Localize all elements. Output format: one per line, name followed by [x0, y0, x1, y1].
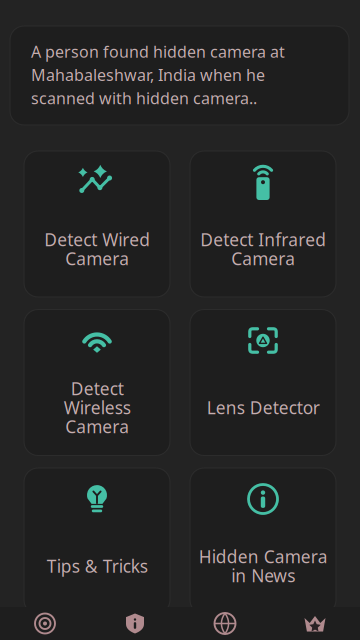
staticText: Detect Wired Camera: [44, 228, 150, 270]
staticText: Detect Infrared Camera: [200, 228, 326, 270]
staticText: Lens Detector: [206, 396, 319, 419]
button[interactable]: Hidden Camera in News: [190, 468, 336, 614]
button[interactable]: Detect Infrared Camera: [190, 151, 336, 297]
button[interactable]: Detect: [0, 607, 90, 640]
staticText: A person found hidden camera at Mahabale…: [31, 41, 285, 109]
staticText: Detect Wireless Camera: [63, 377, 130, 438]
button[interactable]: Security: [90, 607, 180, 640]
button[interactable]: Tips & Tricks: [24, 468, 170, 614]
staticText: Tips & Tricks: [46, 554, 147, 577]
button[interactable]: Browse: [180, 607, 270, 640]
button[interactable]: Detect Wireless Camera: [24, 309, 170, 455]
staticText: Hidden Camera in News: [198, 545, 327, 587]
button[interactable]: Detect Wired Camera: [24, 151, 170, 297]
button[interactable]: Premium: [270, 607, 360, 640]
button[interactable]: Lens Detector: [190, 309, 336, 455]
button[interactable]: A person found hidden camera at Mahabale…: [10, 26, 349, 125]
